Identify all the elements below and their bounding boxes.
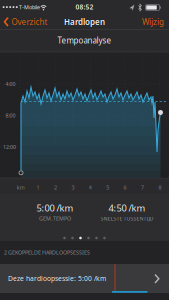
staticText: 8:00 (5, 112, 15, 119)
staticText: 2 GEKOPPELDE HARDLOOPSESSIES (4, 249, 90, 256)
staticText: 5 (106, 184, 109, 191)
staticText: 1 (37, 184, 40, 191)
staticText: Deze hardloopsessie: 5:00 /km (8, 274, 106, 283)
staticText: Wijzig (142, 16, 164, 27)
staticText: 7 (141, 184, 144, 191)
button[interactable]: Wijzig (142, 16, 164, 27)
staticText: T-Mobile (19, 4, 40, 11)
staticText: 5:00 /km (36, 202, 73, 214)
staticText: Hardlopen (64, 16, 105, 27)
staticText: 8 (158, 184, 161, 191)
staticText: Overzicht (11, 16, 47, 27)
button[interactable]: Deze hardloopsessie: 5:00 /km (0, 264, 169, 293)
staticText: 3 (71, 184, 74, 191)
staticText: 08:52 (75, 3, 93, 11)
staticText: Tempoanalyse (57, 35, 111, 46)
staticText: km (17, 184, 25, 191)
staticText: 6 (124, 184, 127, 191)
staticText: 4 (89, 184, 92, 191)
staticText: GEM. TEMPO (39, 215, 71, 222)
staticText: 12:00 (3, 143, 16, 151)
staticText: SNELSTE TUSSENTIJD (100, 215, 153, 222)
button[interactable]: Overzicht (3, 16, 47, 27)
staticText: 4:50 /km (108, 202, 145, 214)
staticText: 4:00 (5, 80, 15, 88)
staticText: 2 (54, 184, 57, 191)
